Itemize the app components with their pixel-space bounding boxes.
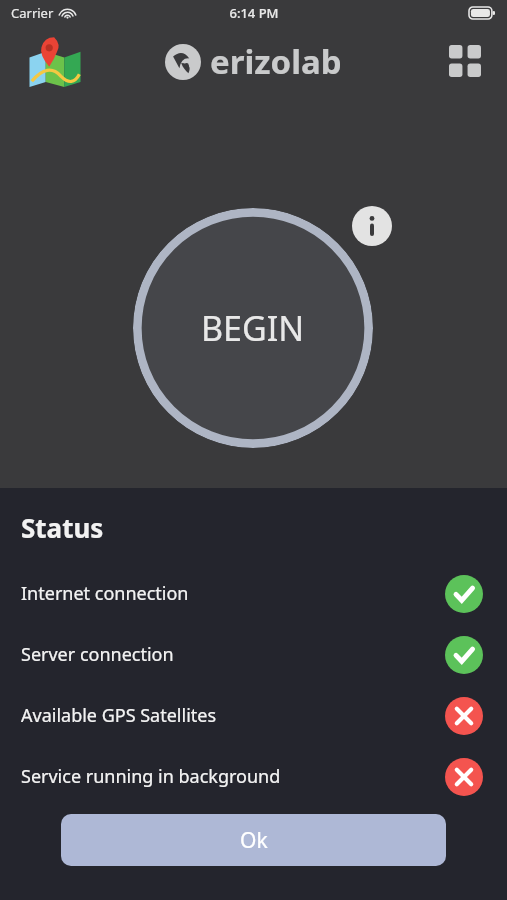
- button[interactable]: Ok: [61, 814, 446, 866]
- staticText: Service running in background: [21, 764, 445, 789]
- button[interactable]: BEGIN: [133, 208, 373, 448]
- button[interactable]: erizolab: [165, 39, 342, 84]
- button[interactable]: Available GPS Satellites: [0, 685, 507, 746]
- staticText: erizolab: [210, 39, 342, 84]
- staticText: Available GPS Satellites: [21, 703, 445, 728]
- button[interactable]: Info: [350, 204, 394, 248]
- staticText: Internet connection: [21, 581, 445, 606]
- staticText: Server connection: [21, 642, 445, 667]
- button[interactable]: Menu: [443, 39, 487, 83]
- staticText: 6:14 PM: [229, 4, 279, 22]
- button[interactable]: Map: [24, 30, 86, 92]
- staticText: Carrier: [11, 4, 54, 22]
- button[interactable]: Service running in background: [0, 746, 507, 807]
- button[interactable]: Server connection: [0, 624, 507, 685]
- staticText: BEGIN: [201, 305, 305, 351]
- button[interactable]: Internet connection: [0, 563, 507, 624]
- staticText: Ok: [240, 826, 268, 855]
- staticText: Status: [21, 510, 104, 545]
